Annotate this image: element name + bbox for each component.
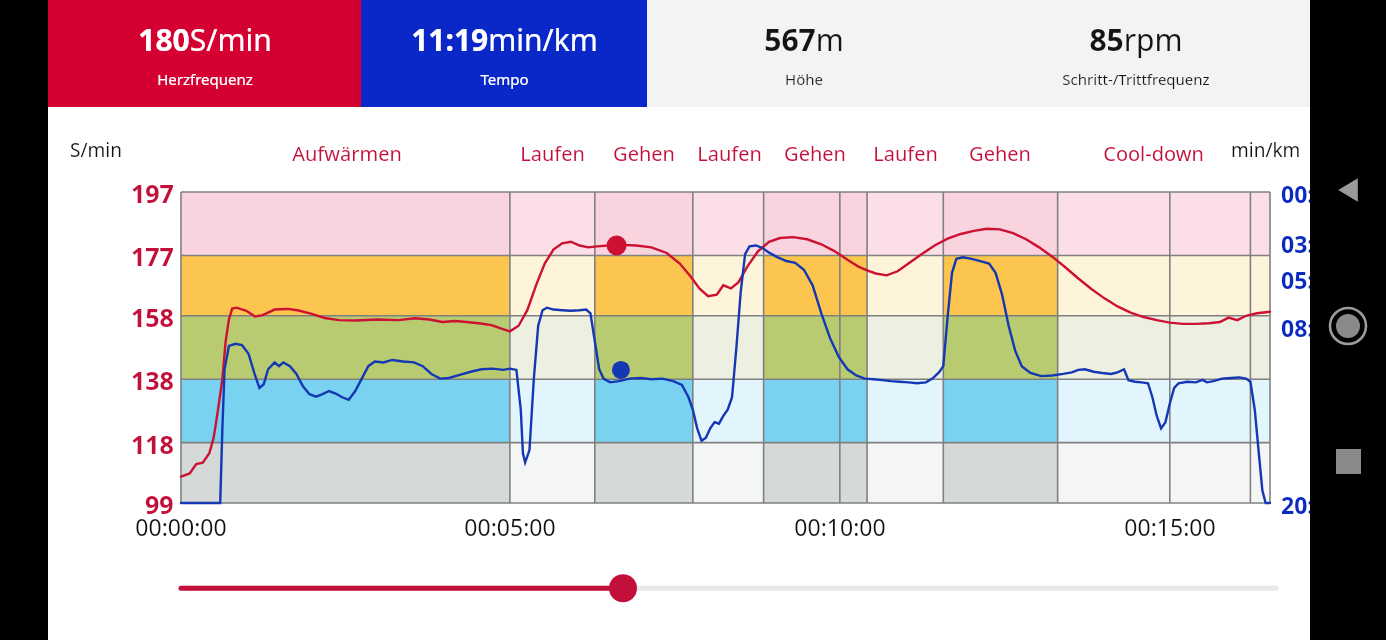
staticText: 00:10:00 bbox=[794, 511, 886, 542]
staticText: 177 bbox=[131, 239, 174, 273]
button[interactable]: 85rpm bbox=[961, 0, 1310, 107]
staticText: Herzfrequenz bbox=[157, 69, 253, 89]
staticText: Schritt-/Trittfrequenz bbox=[1062, 69, 1210, 89]
staticText: 00:00:00 bbox=[135, 511, 227, 542]
staticText: 05:00 bbox=[1281, 264, 1341, 295]
button[interactable] bbox=[48, 565, 1310, 640]
staticText: 00:15:00 bbox=[1124, 511, 1216, 542]
button[interactable]: 567m bbox=[647, 0, 961, 107]
staticText: 567m bbox=[764, 19, 844, 60]
staticText: 11:19min/km bbox=[411, 19, 598, 60]
button[interactable]: Recents bbox=[1318, 431, 1378, 491]
staticText: 197 bbox=[131, 176, 174, 210]
staticText: 118 bbox=[131, 427, 174, 461]
staticText: Tempo bbox=[480, 69, 529, 89]
staticText: 180S/min bbox=[138, 19, 272, 60]
staticText: Laufen bbox=[520, 140, 585, 167]
staticText: min/km bbox=[1231, 137, 1301, 163]
staticText: Cool-down bbox=[1103, 140, 1204, 167]
button[interactable]: Back bbox=[1318, 160, 1378, 220]
staticText: Aufwärmen bbox=[292, 140, 402, 167]
staticText: Gehen bbox=[969, 140, 1031, 167]
staticText: Gehen bbox=[784, 140, 846, 167]
staticText: 03:00 bbox=[1281, 228, 1341, 259]
staticText: 138 bbox=[131, 363, 174, 397]
staticText: 00:05:00 bbox=[464, 511, 556, 542]
staticText: Gehen bbox=[613, 140, 675, 167]
button[interactable]: 11:19min/km bbox=[361, 0, 647, 107]
staticText: Laufen bbox=[873, 140, 938, 167]
staticText: 99 bbox=[145, 487, 174, 521]
staticText: 20:00 bbox=[1281, 489, 1341, 520]
staticText: 00:00 bbox=[1281, 178, 1341, 209]
staticText: Laufen bbox=[697, 140, 762, 167]
staticText: 85rpm bbox=[1089, 19, 1183, 60]
staticText: 08:00 bbox=[1281, 312, 1341, 343]
button[interactable]: Home bbox=[1315, 293, 1381, 359]
staticText: S/min bbox=[70, 137, 122, 163]
staticText: Höhe bbox=[785, 69, 823, 89]
staticText: 158 bbox=[131, 300, 174, 334]
button[interactable]: 180S/min bbox=[48, 0, 361, 107]
